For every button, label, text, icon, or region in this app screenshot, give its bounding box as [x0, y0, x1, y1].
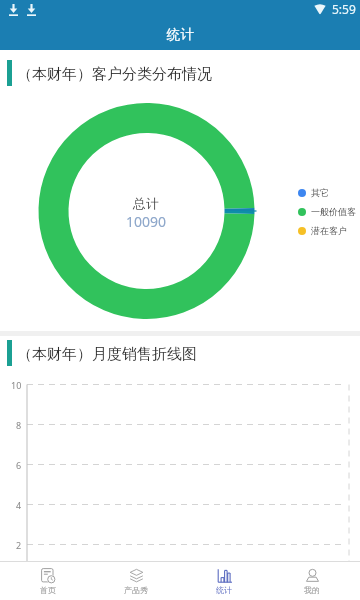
staticText: 10090	[126, 212, 167, 231]
staticText: 潜在客户	[311, 225, 347, 236]
staticText: 统计	[216, 585, 232, 595]
staticText: （本财年）月度销售折线图	[17, 345, 197, 364]
button[interactable]: 产品秀	[96, 562, 176, 600]
staticText: （本财年）客户分类分布情况	[17, 65, 212, 84]
button[interactable]: 首页	[8, 562, 88, 600]
staticText: 我的	[304, 585, 320, 595]
staticText: 首页	[40, 585, 56, 595]
staticText: 5:59	[332, 1, 356, 17]
staticText: 产品秀	[124, 585, 148, 595]
staticText: 统计	[167, 26, 194, 43]
button[interactable]: 我的	[272, 562, 352, 600]
staticText: 4	[16, 499, 22, 511]
staticText: 一般价值客	[311, 206, 356, 217]
staticText: 10	[11, 379, 22, 391]
staticText: 其它	[311, 187, 329, 198]
button[interactable]: 统计	[184, 562, 264, 600]
staticText: 6	[16, 459, 22, 471]
staticText: 总计	[133, 195, 159, 211]
staticText: 2	[16, 539, 22, 551]
staticText: 8	[16, 419, 22, 431]
